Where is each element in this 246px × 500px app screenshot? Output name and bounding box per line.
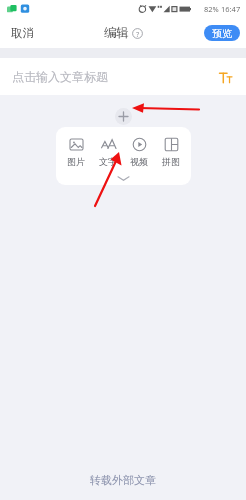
button[interactable]: 点击输入文章标题 (0, 58, 246, 95)
button[interactable]: Collapse (56, 172, 191, 185)
staticText: 编辑 (104, 25, 129, 41)
staticText: 视频 (130, 156, 148, 167)
button[interactable]: 视频 (128, 135, 150, 168)
staticText: 预览 (212, 27, 232, 40)
staticText: 取消 (11, 26, 34, 40)
staticText: 82% (204, 4, 219, 14)
button[interactable]: Help (132, 28, 143, 39)
button[interactable]: Add content (115, 108, 132, 125)
staticText: 图片 (67, 156, 85, 167)
staticText: 文字 (99, 156, 117, 167)
button[interactable]: 预览 (204, 25, 240, 41)
button[interactable]: 取消 (0, 21, 45, 45)
button[interactable]: 拼图 (160, 135, 182, 168)
staticText: 转载外部文章 (90, 473, 156, 487)
button[interactable]: 文字 (97, 135, 119, 168)
staticText: 点击输入文章标题 (12, 69, 216, 84)
button[interactable]: 图片 (65, 135, 87, 168)
staticText: ? (136, 29, 140, 39)
button[interactable]: 转载外部文章 (0, 460, 246, 500)
button[interactable]: Text style (216, 68, 234, 86)
staticText: 16:47 (221, 4, 241, 14)
staticText: 拼图 (162, 156, 180, 167)
